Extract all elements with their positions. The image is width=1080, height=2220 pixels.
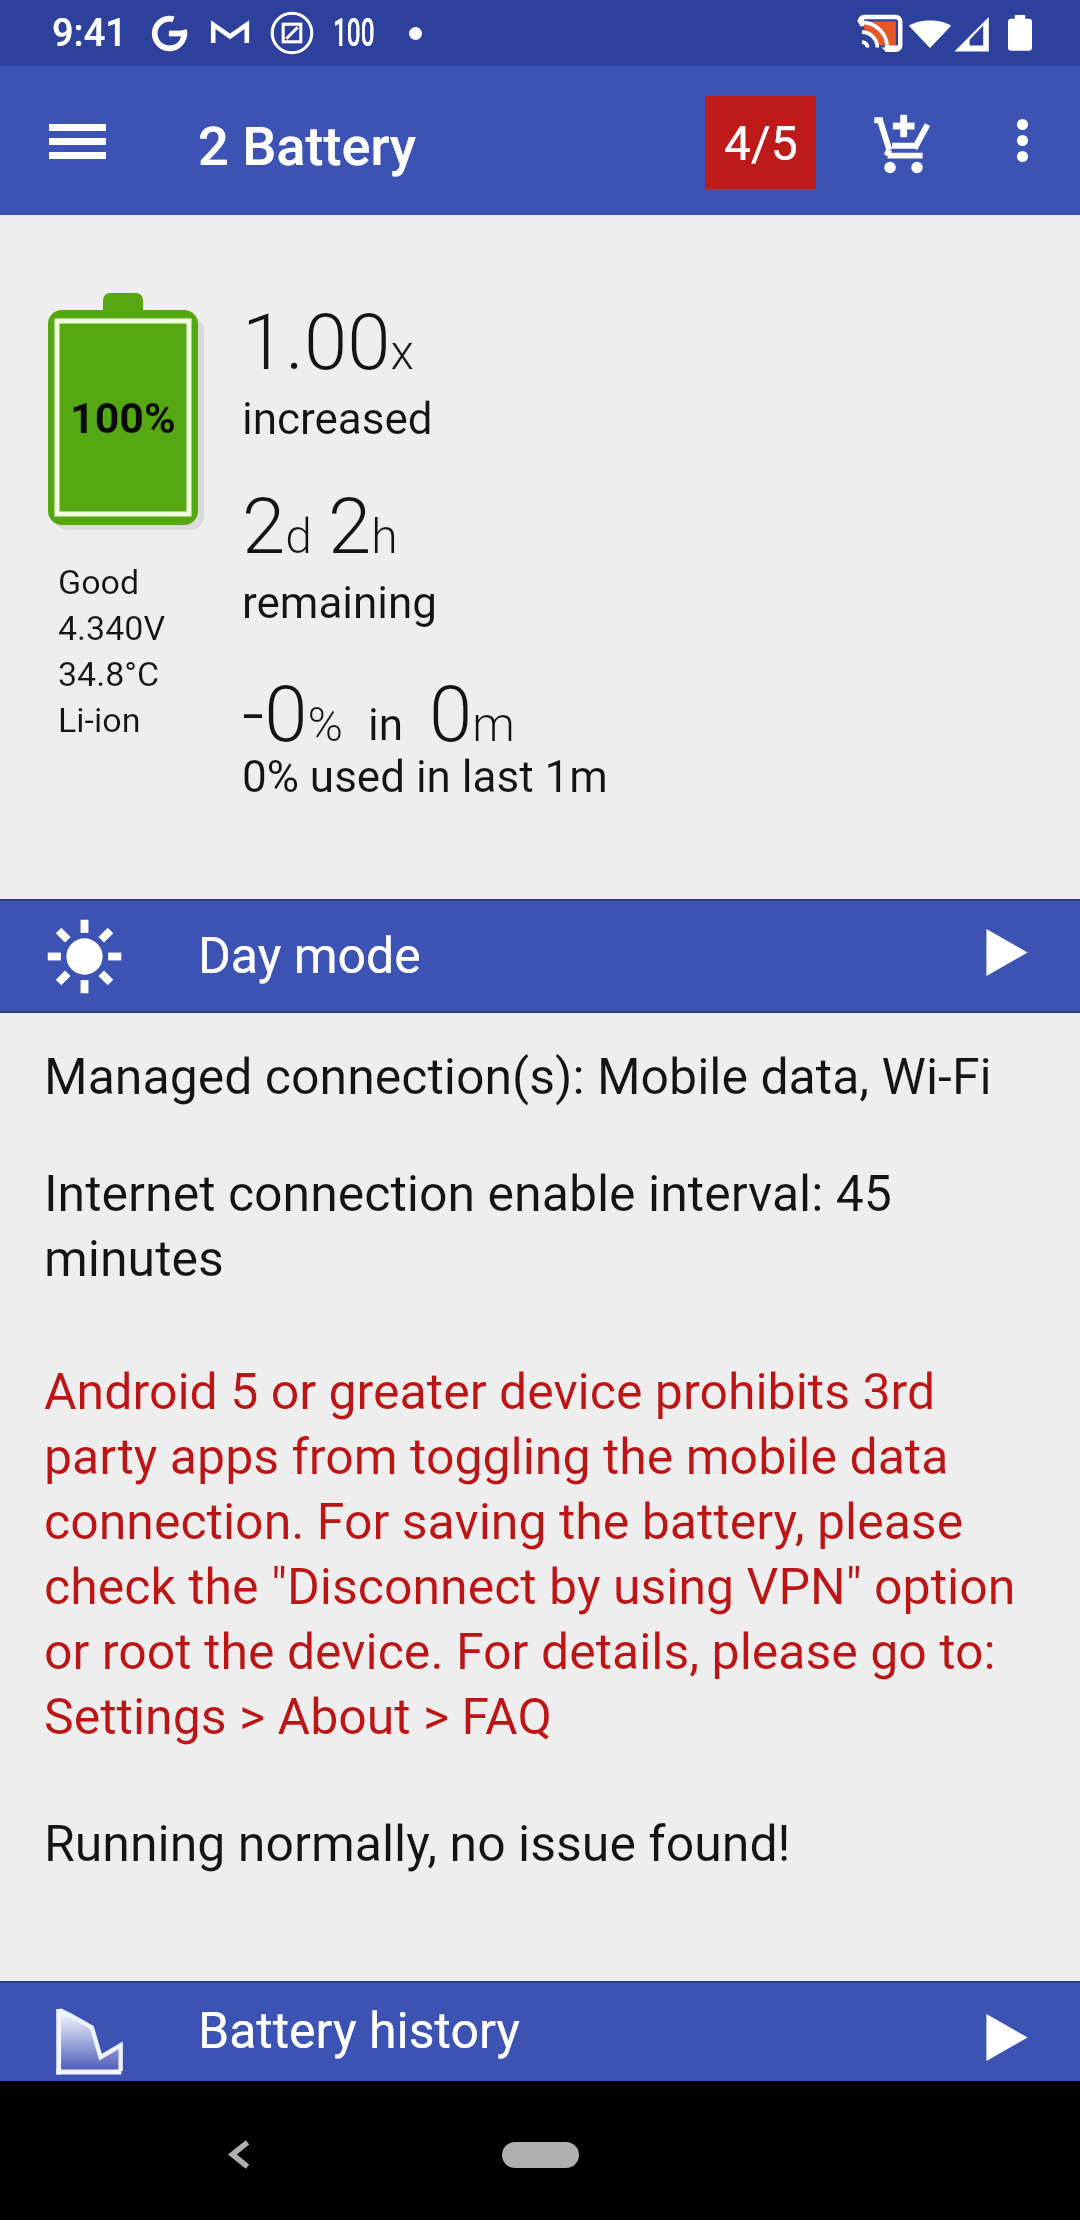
staticText: Managed connection(s): Mobile data, Wi-F… [44, 1043, 992, 1108]
staticText: Running normally, no issue found! [44, 1810, 791, 1875]
staticText: Android 5 or greater device prohibits 3r… [44, 1358, 1042, 1748]
staticText: 100% [70, 393, 176, 443]
staticText: 1.00x [242, 298, 414, 388]
staticText: Day mode [198, 927, 421, 986]
staticText: 0m [429, 670, 515, 760]
staticText: in [368, 699, 403, 751]
staticText: increased [242, 388, 433, 446]
staticText: Good 4.340V 34.8°C Li-ion [58, 558, 166, 742]
staticText: 0% used in last 1m [242, 746, 608, 804]
button[interactable]: Add to cart [848, 67, 958, 216]
button[interactable]: 4/5 [705, 96, 816, 189]
staticText: Battery history [198, 2002, 520, 2061]
staticText: 4/5 [724, 115, 798, 171]
staticText: 2h [328, 482, 398, 572]
button[interactable]: Open navigation menu [22, 86, 132, 196]
staticText: 100 [333, 11, 375, 56]
staticText: 9:41 [52, 11, 127, 56]
button[interactable]: More options [966, 66, 1078, 215]
button[interactable]: Battery history [0, 1981, 1080, 2081]
staticText: 2d [242, 482, 312, 572]
staticText: 2 Battery [198, 115, 417, 178]
staticText: Internet connection enable interval: 45 … [44, 1160, 1042, 1290]
button[interactable]: Back [207, 2125, 271, 2183]
staticText: remaining [242, 572, 438, 630]
button[interactable]: Day mode [0, 899, 1080, 1013]
staticText: -0% [242, 670, 344, 760]
button[interactable]: Home [502, 2142, 579, 2168]
